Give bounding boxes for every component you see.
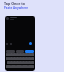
button[interactable] bbox=[10, 57, 13, 60]
button[interactable] bbox=[28, 53, 31, 56]
button[interactable] bbox=[13, 61, 16, 64]
button[interactable] bbox=[25, 61, 28, 64]
button[interactable] bbox=[13, 57, 16, 60]
button[interactable] bbox=[22, 53, 25, 56]
button[interactable] bbox=[10, 61, 13, 64]
button[interactable] bbox=[16, 53, 19, 56]
button[interactable]: Send bbox=[29, 42, 32, 45]
button[interactable] bbox=[7, 61, 10, 64]
button[interactable] bbox=[22, 61, 25, 64]
button[interactable] bbox=[28, 57, 31, 60]
button[interactable] bbox=[6, 65, 11, 68]
button[interactable] bbox=[31, 57, 34, 60]
button[interactable] bbox=[6, 53, 8, 56]
button[interactable] bbox=[8, 53, 10, 56]
button[interactable] bbox=[16, 50, 24, 53]
button[interactable] bbox=[6, 50, 15, 53]
button[interactable] bbox=[25, 53, 28, 56]
button[interactable] bbox=[31, 61, 34, 64]
button[interactable] bbox=[25, 50, 34, 53]
button[interactable] bbox=[19, 61, 22, 64]
button[interactable] bbox=[16, 57, 19, 60]
staticText: Paste Anywhere bbox=[4, 6, 29, 10]
button[interactable] bbox=[31, 53, 34, 56]
staticText: Tap Once to bbox=[4, 1, 26, 6]
button[interactable] bbox=[28, 61, 31, 64]
button[interactable] bbox=[13, 53, 16, 56]
button[interactable] bbox=[22, 57, 25, 60]
button[interactable] bbox=[19, 53, 22, 56]
button[interactable] bbox=[10, 53, 13, 56]
button[interactable] bbox=[25, 57, 28, 60]
button[interactable] bbox=[6, 57, 8, 60]
button[interactable] bbox=[16, 61, 19, 64]
button[interactable] bbox=[8, 57, 10, 60]
button[interactable] bbox=[19, 57, 22, 60]
button[interactable] bbox=[11, 65, 16, 68]
